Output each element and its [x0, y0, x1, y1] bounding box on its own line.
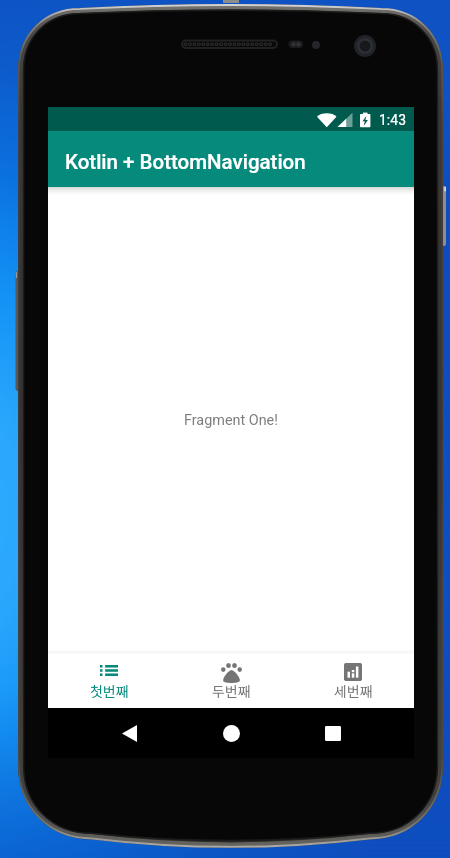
staticText: 1:43: [379, 112, 406, 128]
button[interactable]: Recents: [312, 711, 353, 755]
button[interactable]: Home: [211, 711, 252, 755]
button[interactable]: 두번째: [170, 654, 292, 674]
button[interactable]: 첫번째: [48, 654, 170, 674]
staticText: Kotlin + BottomNavigation: [65, 150, 306, 174]
staticText: 세번째: [334, 681, 373, 701]
button[interactable]: Back: [109, 711, 150, 755]
button[interactable]: Kotlin + BottomNavigation: [48, 131, 414, 187]
staticText: 두번째: [212, 681, 251, 701]
button[interactable]: 세번째: [292, 654, 414, 674]
staticText: 첫번째: [90, 681, 129, 701]
staticText: Fragment One!: [184, 412, 278, 429]
